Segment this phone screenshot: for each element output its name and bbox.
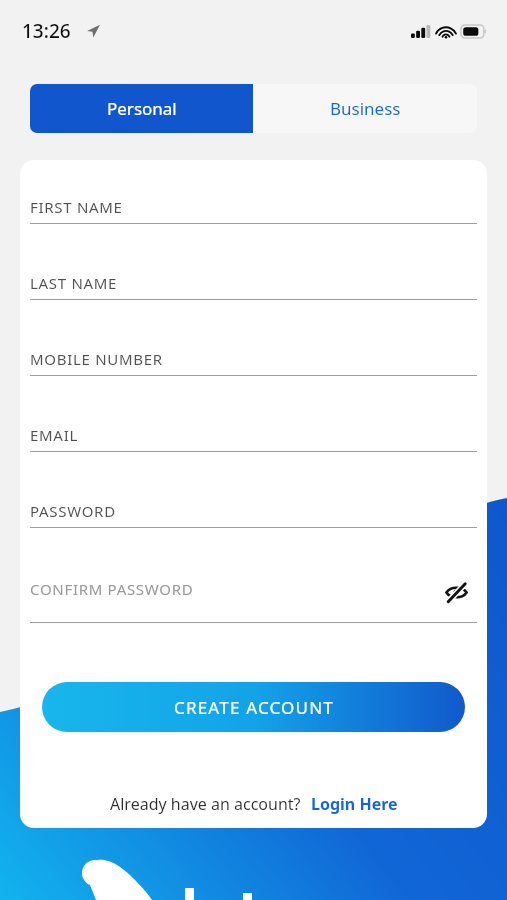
staticText: LAST NAME bbox=[30, 273, 118, 293]
staticText: 13:26 bbox=[22, 18, 71, 44]
button[interactable]: Personal bbox=[30, 84, 253, 133]
staticText: Login Here bbox=[311, 793, 398, 815]
staticText: EMAIL bbox=[30, 425, 78, 445]
other: Location active bbox=[86, 24, 100, 38]
button[interactable]: CREATE ACCOUNT bbox=[42, 682, 465, 732]
staticText: Already have an account? bbox=[110, 793, 301, 815]
button[interactable]: Login Here bbox=[311, 793, 398, 815]
staticText: Business bbox=[330, 97, 401, 120]
button[interactable]: Business bbox=[253, 84, 477, 133]
staticText: PASSWORD bbox=[30, 501, 116, 521]
button[interactable]: Toggle password visibility bbox=[441, 577, 471, 607]
staticText: Personal bbox=[107, 97, 177, 120]
staticText: MOBILE NUMBER bbox=[30, 349, 163, 369]
staticText: CREATE ACCOUNT bbox=[174, 696, 334, 719]
staticText: FIRST NAME bbox=[30, 197, 123, 217]
staticText: CONFIRM PASSWORD bbox=[30, 579, 194, 599]
